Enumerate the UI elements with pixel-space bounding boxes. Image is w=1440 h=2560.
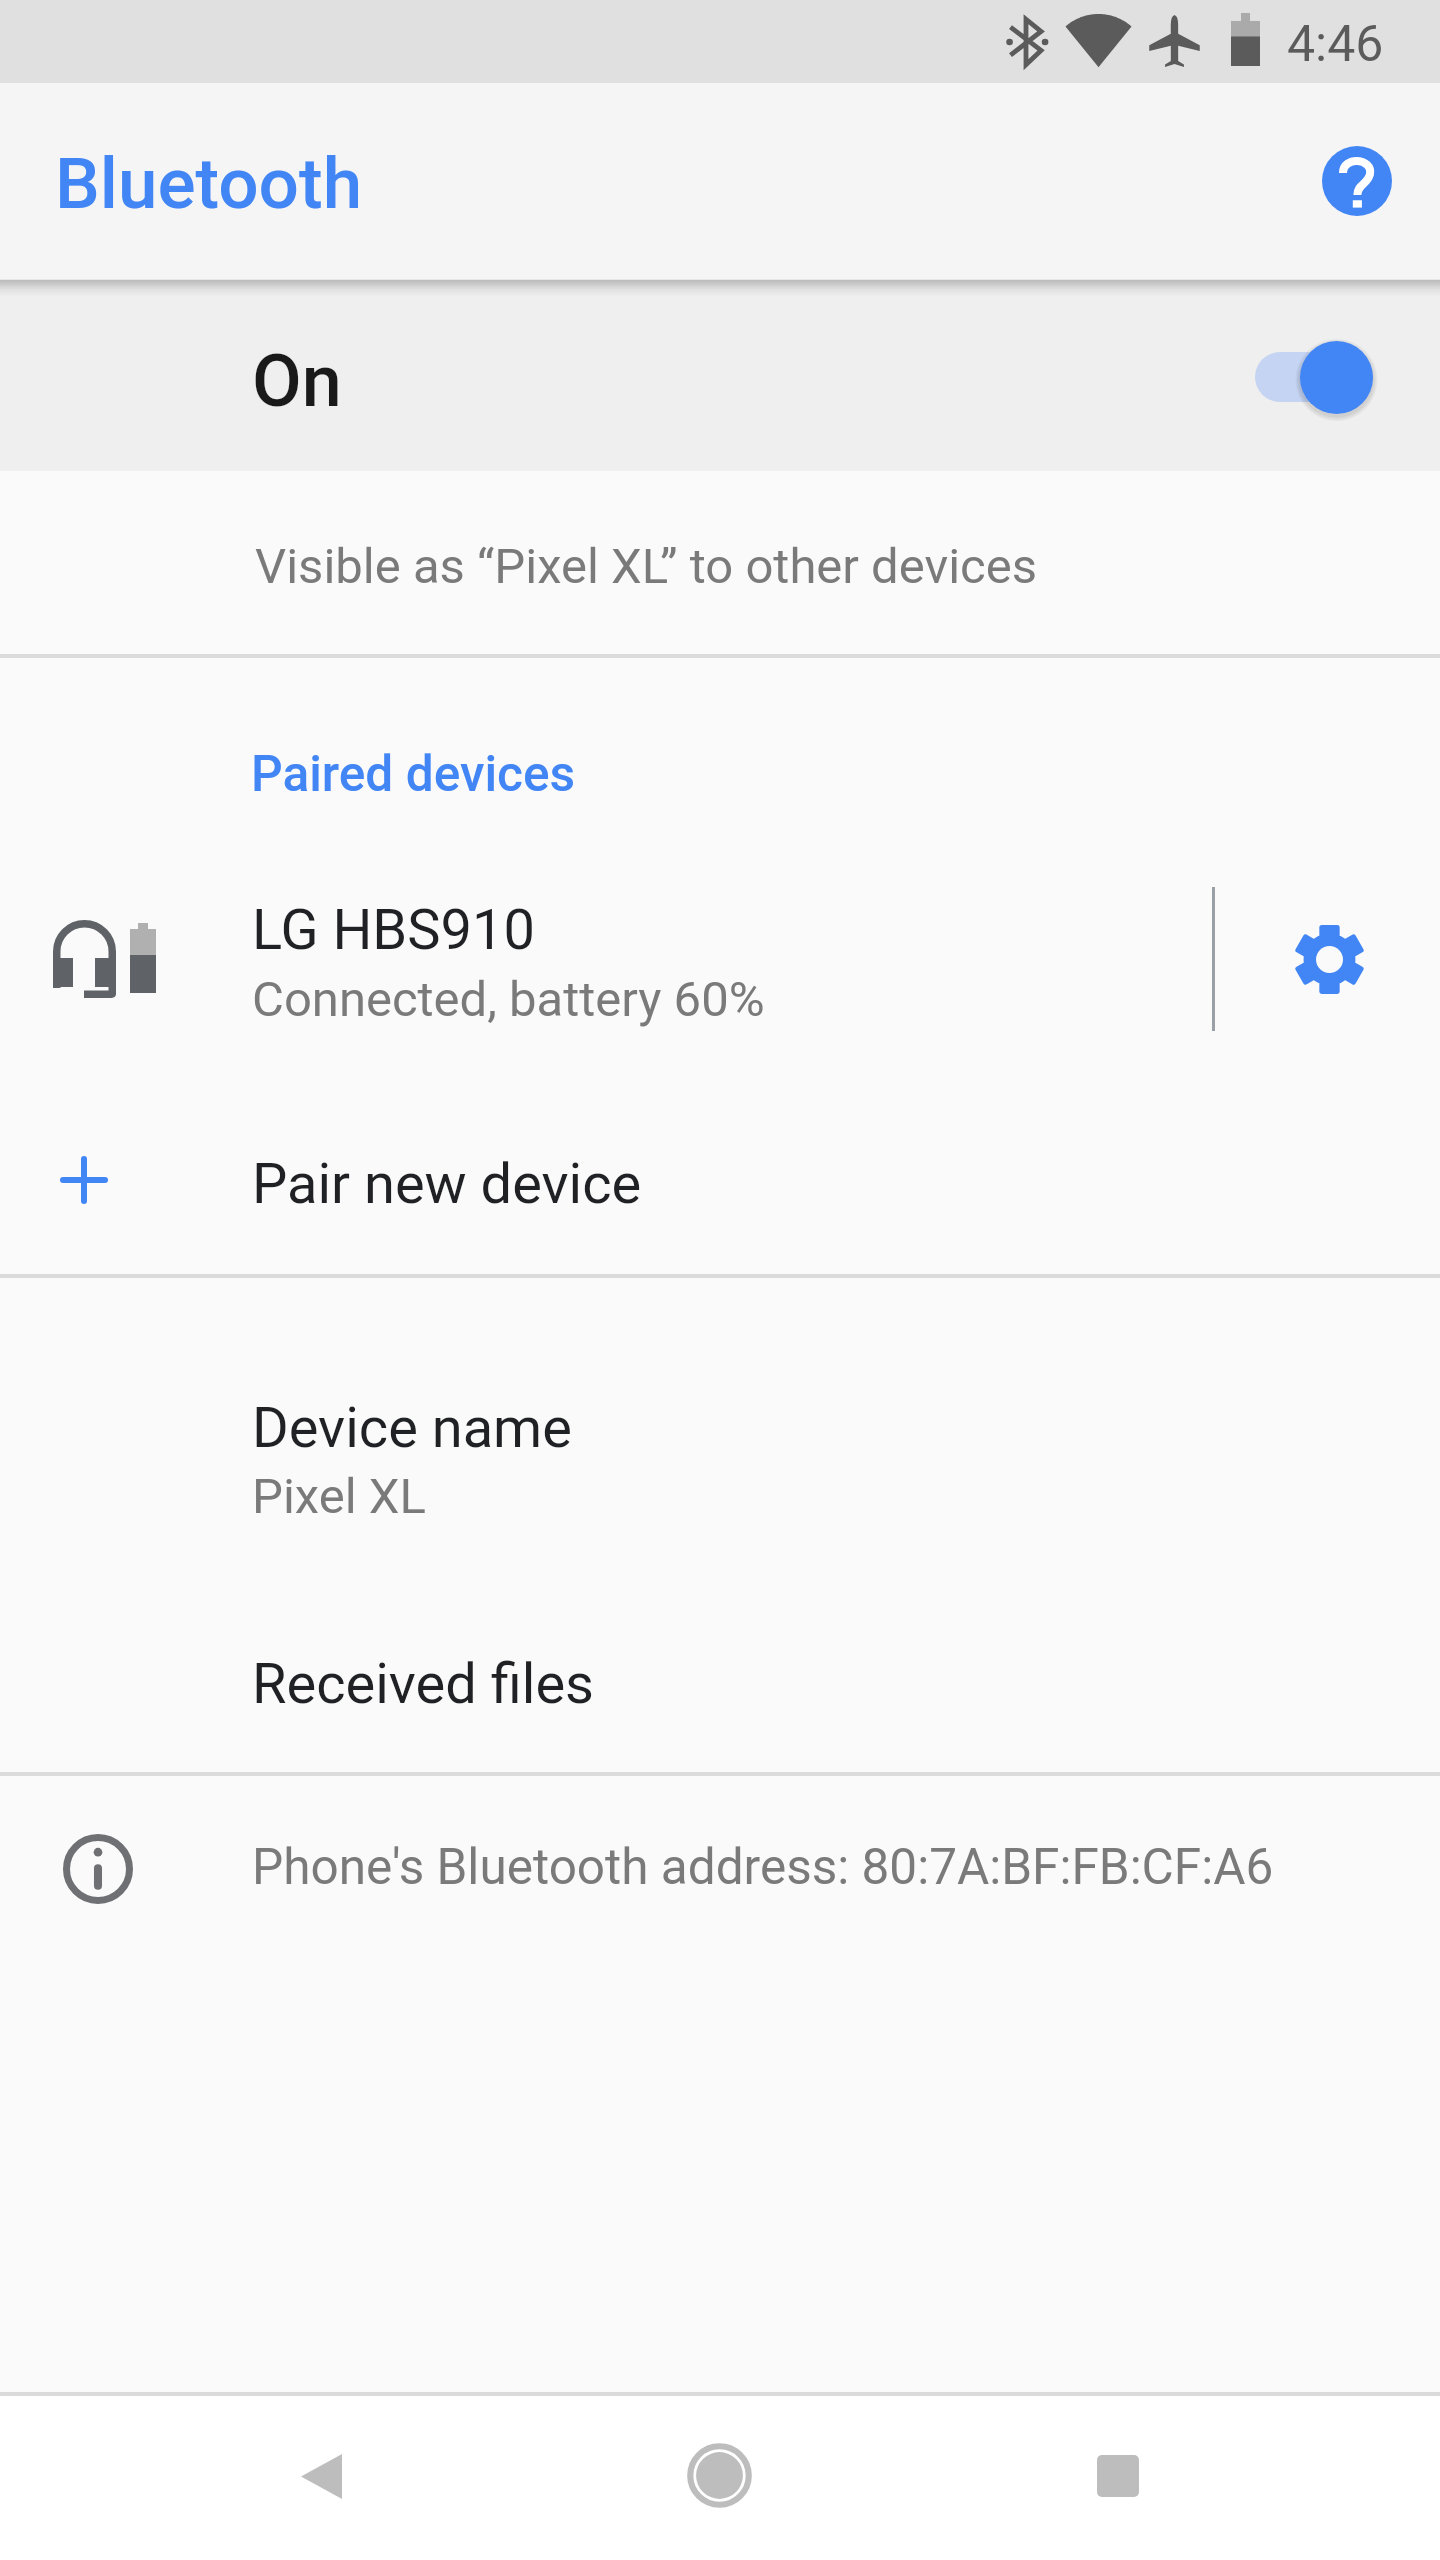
button[interactable]: Back [161,2396,481,2556]
staticText: Bluetooth [55,142,363,225]
staticText: 4:46 [1287,15,1384,74]
button[interactable]: Pair new device [0,1100,1440,1274]
button[interactable]: Device settings [1240,866,1416,1056]
staticText: Paired devices [251,745,576,803]
staticText: Pixel XL [252,1468,426,1525]
staticText: Pair new device [252,1151,642,1217]
button[interactable]: Device name [0,1278,1440,1568]
button[interactable]: Received files [0,1568,1440,1772]
staticText: On [252,339,342,423]
button[interactable]: On [0,297,1440,471]
staticText: Visible as “Pixel XL” to other devices [255,538,1037,595]
staticText: LG HBS910 [252,897,535,963]
button[interactable]: Home [559,2396,879,2554]
button[interactable]: LG HBS910 [0,866,1212,1056]
staticText: Received files [252,1651,595,1717]
button[interactable]: Help [1309,133,1405,229]
button[interactable]: Recents [958,2396,1278,2556]
staticText: Connected, battery 60% [252,971,765,1028]
staticText: Device name [252,1395,572,1461]
staticText: Phone's Bluetooth address: 80:7A:BF:FB:C… [252,1838,1274,1896]
